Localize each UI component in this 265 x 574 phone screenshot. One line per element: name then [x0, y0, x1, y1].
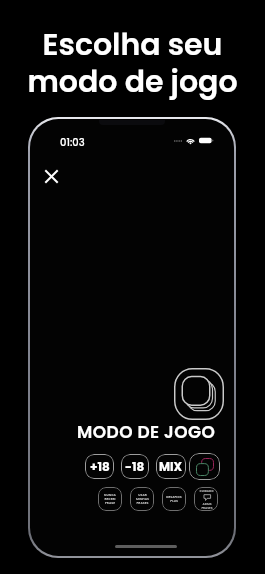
staticText: Escolha seu modo de jogo: [27, 24, 238, 102]
button[interactable]: -18: [121, 454, 149, 479]
button[interactable]: Fechar: [38, 163, 64, 189]
button[interactable]: +18: [85, 454, 114, 479]
button[interactable]: USAR MINHAS FRASES: [130, 487, 154, 511]
button[interactable]: NUNCA RECEBI FRASE: [98, 487, 122, 511]
staticText: USAR MINHAS FRASES: [136, 493, 149, 505]
button[interactable]: CUIDADO: [194, 487, 218, 511]
staticText: ADMS FRASES: [201, 502, 213, 510]
staticText: -18: [125, 458, 145, 475]
button[interactable]: DESAFIOS PLUS: [162, 487, 186, 511]
staticText: NUNCA RECEBI FRASE: [104, 493, 116, 505]
staticText: +18: [90, 458, 110, 475]
button[interactable]: MIX: [156, 454, 186, 479]
staticText: DESAFIOS PLUS: [166, 495, 182, 503]
button[interactable]: Modo especial: [189, 453, 220, 480]
staticText: MODO DE JOGO: [77, 420, 216, 444]
staticText: MIX: [159, 458, 183, 475]
staticText: 01:03: [60, 135, 85, 149]
staticText: CUIDADO: [199, 489, 214, 493]
